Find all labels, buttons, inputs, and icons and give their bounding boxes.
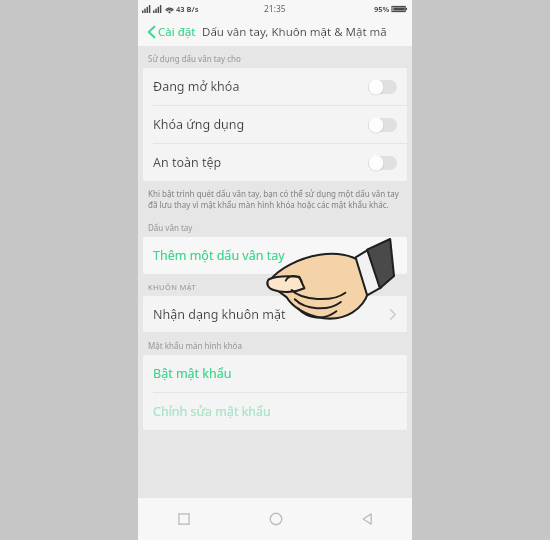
button[interactable]: Bật mật khẩu	[143, 355, 407, 392]
button[interactable]: Đang mở khóa	[143, 68, 407, 105]
button[interactable]: Chỉnh sửa mật khẩu	[143, 393, 407, 430]
button[interactable]: Thêm một dấu vân tay	[143, 237, 407, 274]
staticText: Thêm một dấu vân tay	[153, 247, 285, 264]
button[interactable]: Cài đặt	[146, 21, 198, 43]
staticText: An toàn tệp	[153, 154, 222, 171]
staticText: Khi bật trình quét dấu vân tay, bạn có t…	[148, 188, 402, 210]
staticText: 43 B/s	[176, 4, 199, 14]
staticText: KHUÔN MẶT	[148, 282, 197, 292]
staticText: Đang mở khóa	[153, 78, 240, 95]
staticText: Bật mật khẩu	[153, 365, 232, 382]
button[interactable]: Home	[230, 498, 321, 540]
button[interactable]: Recent apps	[138, 498, 230, 540]
staticText: Cài đặt	[158, 24, 196, 40]
staticText: Chỉnh sửa mật khẩu	[153, 403, 271, 420]
staticText: Dấu vân tay, Khuôn mặt & Mật mã	[202, 24, 387, 40]
staticText: 21:35	[264, 3, 286, 15]
staticText: Mật khẩu màn hình khóa	[148, 340, 242, 351]
staticText: Khóa ứng dụng	[153, 116, 245, 133]
staticText: Nhận dạng khuôn mặt	[153, 306, 286, 323]
button[interactable]: An toàn tệp	[143, 144, 407, 181]
button[interactable]: Back	[321, 498, 412, 540]
button[interactable]: Khóa ứng dụng	[143, 106, 407, 143]
staticText: 95%	[374, 4, 390, 14]
staticText: Dấu vân tay	[148, 222, 193, 233]
button[interactable]: Nhận dạng khuôn mặt	[143, 296, 407, 332]
staticText: Sử dụng dấu vân tay cho	[148, 53, 241, 64]
